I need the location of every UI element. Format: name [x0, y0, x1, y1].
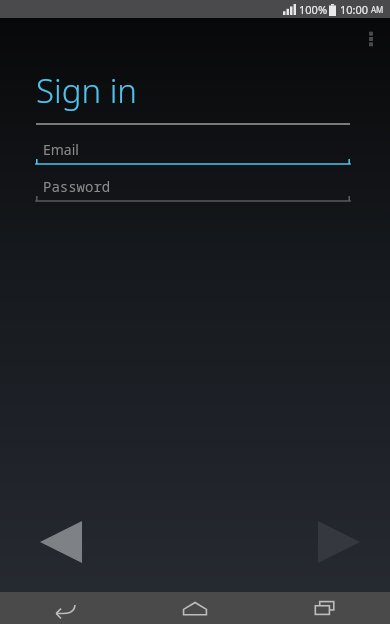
staticText: 100%	[299, 2, 328, 17]
button[interactable]: Next	[308, 514, 370, 570]
button[interactable]: Recent apps	[260, 592, 390, 624]
button[interactable]: More options	[356, 24, 386, 54]
button[interactable]: Previous	[30, 514, 92, 570]
staticText: AM	[371, 4, 384, 15]
button[interactable]: Email	[36, 137, 350, 165]
button[interactable]: Password	[36, 174, 350, 202]
staticText: Email	[43, 140, 79, 159]
button[interactable]: Home	[130, 592, 260, 624]
button[interactable]: Back	[0, 592, 130, 624]
staticText: Password	[43, 177, 111, 196]
staticText: Sign in	[36, 68, 137, 113]
staticText: 10:00	[340, 2, 369, 17]
